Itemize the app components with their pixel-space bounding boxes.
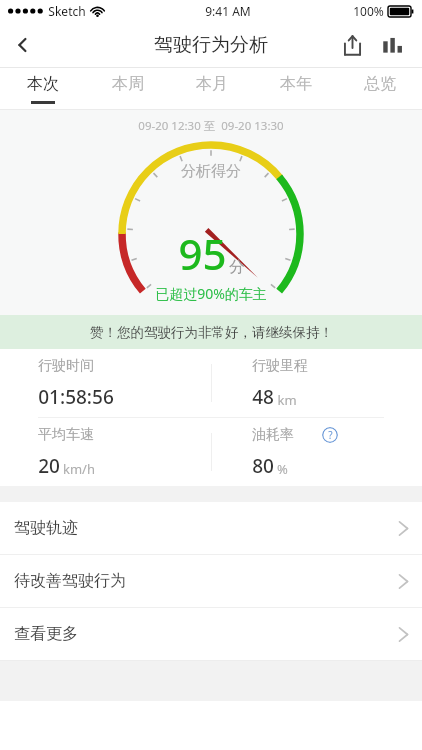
staticText: 行驶里程	[252, 357, 308, 375]
staticText: 100%	[353, 3, 384, 19]
staticText: 80	[252, 453, 274, 479]
staticText: Sketch	[48, 3, 86, 19]
button[interactable]: 总览	[338, 68, 422, 110]
staticText: %	[277, 460, 288, 478]
staticText: 驾驶轨迹	[14, 518, 78, 538]
staticText: km	[277, 391, 297, 409]
staticText: 20	[38, 453, 60, 479]
button[interactable]: Back	[0, 22, 46, 68]
staticText: ?	[328, 428, 333, 442]
button[interactable]: 查看更多	[0, 608, 422, 660]
button[interactable]: 本次	[0, 68, 85, 110]
staticText: 待改善驾驶行为	[14, 571, 126, 591]
staticText: 油耗率	[252, 426, 294, 444]
staticText: 平均车速	[38, 426, 94, 444]
staticText: 9:41 AM	[205, 3, 251, 19]
staticText: 本次	[27, 74, 59, 94]
staticText: 本周	[112, 74, 144, 94]
staticText: 95	[178, 225, 227, 282]
staticText: 驾驶行为分析	[154, 33, 268, 57]
button[interactable]: 本月	[170, 68, 254, 110]
staticText: 分	[229, 257, 245, 277]
staticText: 分析得分	[181, 162, 241, 181]
staticText: 查看更多	[14, 624, 78, 644]
button[interactable]: 驾驶轨迹	[0, 502, 422, 554]
staticText: 48	[252, 384, 274, 410]
button[interactable]: 本周	[85, 68, 170, 110]
staticText: 赞！您的驾驶行为非常好，请继续保持！	[90, 324, 333, 341]
staticText: 已超过90%的车主	[155, 284, 267, 303]
staticText: 行驶时间	[38, 357, 94, 375]
button[interactable]: Share	[332, 25, 372, 65]
button[interactable]: Statistics	[372, 25, 412, 65]
button[interactable]: Help	[322, 427, 338, 443]
staticText: km/h	[63, 460, 95, 478]
staticText: 本月	[196, 74, 228, 94]
staticText: 09-20 12:30 至 09-20 13:30	[138, 118, 284, 134]
button[interactable]: 待改善驾驶行为	[0, 555, 422, 607]
staticText: 本年	[280, 74, 312, 94]
button[interactable]: 本年	[254, 68, 338, 110]
staticText: 总览	[364, 74, 396, 94]
staticText: 01:58:56	[38, 384, 114, 410]
